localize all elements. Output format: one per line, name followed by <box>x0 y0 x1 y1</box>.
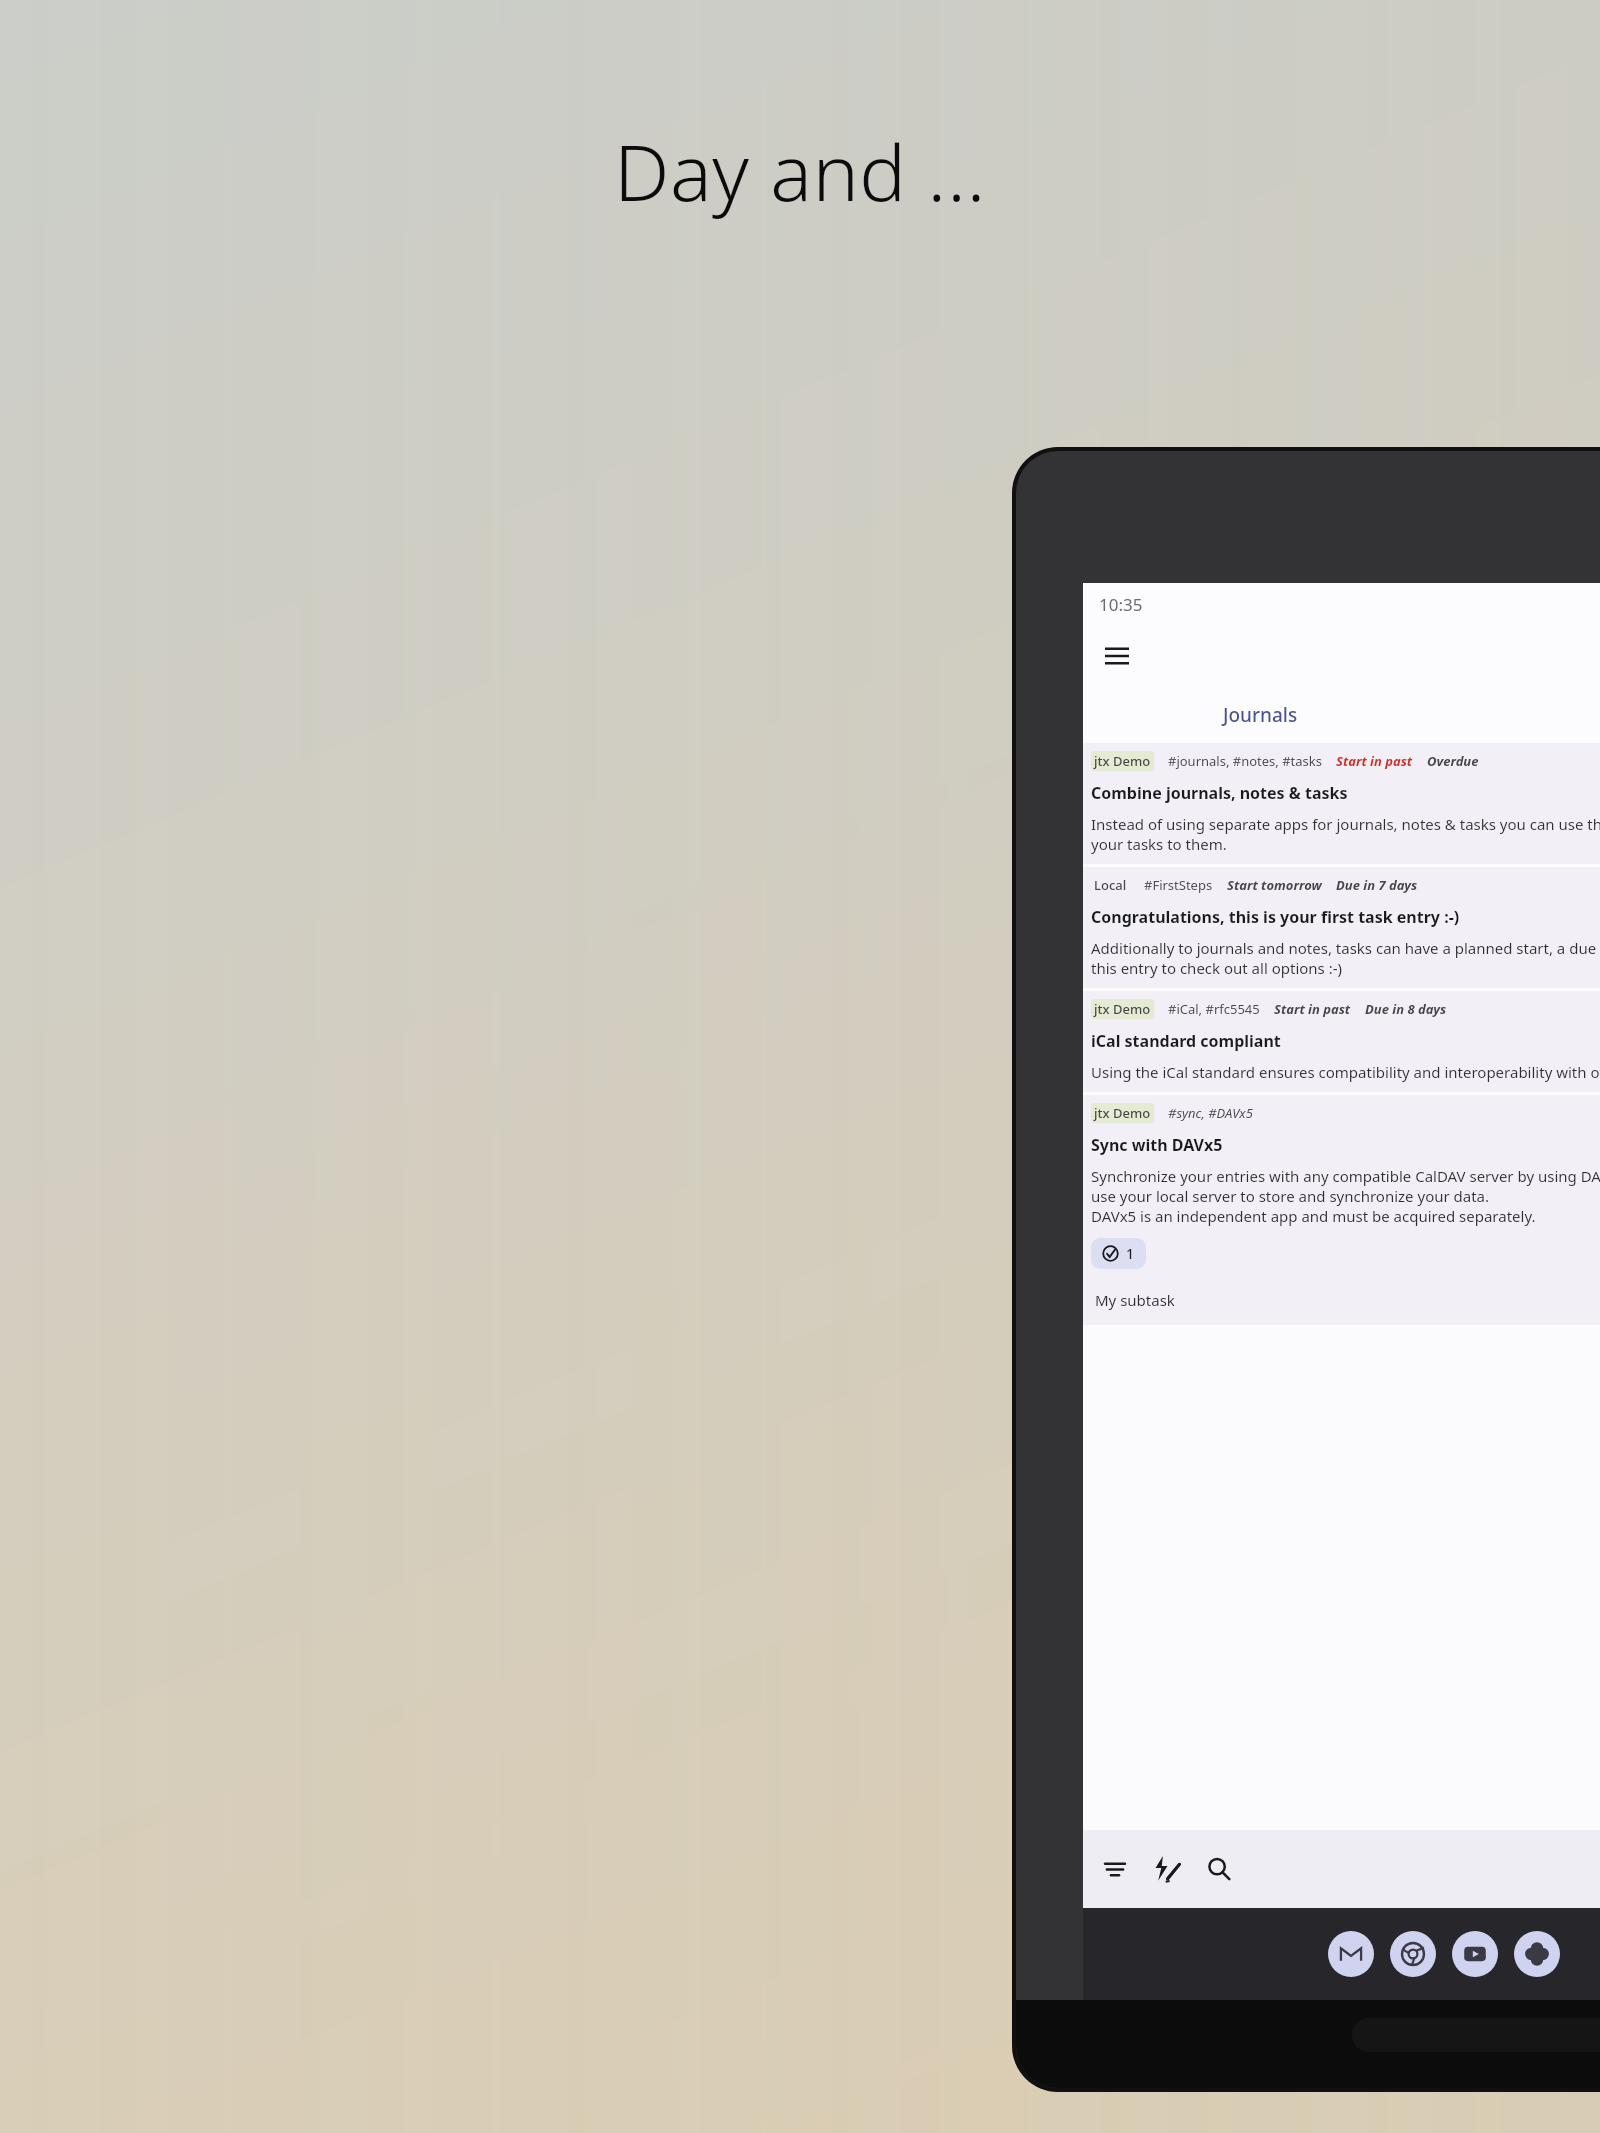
button[interactable]: Menu <box>1093 632 1141 680</box>
button[interactable]: My subtask <box>1091 1279 1600 1321</box>
staticText: Overdue <box>1427 752 1479 770</box>
button[interactable]: Photos <box>1514 1931 1560 1977</box>
staticText: Sync with DAVx5 <box>1091 1134 1223 1156</box>
staticText: Start in past <box>1336 752 1413 770</box>
staticText: use your local server to store and synch… <box>1091 1186 1490 1206</box>
button[interactable]: Chrome <box>1390 1931 1436 1977</box>
button[interactable]: Search <box>1193 1843 1245 1895</box>
staticText: #FirstSteps <box>1144 876 1213 894</box>
staticText: Instead of using separate apps for journ… <box>1091 814 1600 834</box>
button[interactable]: jtx Demo <box>1083 1095 1600 1325</box>
staticText: Using the iCal standard ensures compatib… <box>1091 1062 1600 1082</box>
staticText: DAVx5 is an independent app and must be … <box>1091 1206 1536 1226</box>
staticText: #journals, #notes, #tasks <box>1168 752 1322 770</box>
button[interactable]: jtx Demo <box>1083 991 1600 1092</box>
staticText: Congratulations, this is your first task… <box>1091 906 1460 928</box>
staticText: this entry to check out all options :-) <box>1091 958 1343 978</box>
button[interactable]: Journals <box>1223 702 1298 728</box>
staticText: Synchronize your entries with any compat… <box>1091 1166 1600 1186</box>
staticText: jtx Demo <box>1094 1104 1151 1122</box>
staticText: Due in 7 days <box>1336 876 1418 894</box>
staticText: your tasks to them. <box>1091 834 1227 854</box>
staticText: Local <box>1094 876 1127 894</box>
staticText: #iCal, #rfc5545 <box>1168 1000 1260 1018</box>
staticText: Additionally to journals and notes, task… <box>1091 938 1600 958</box>
staticText: 1 <box>1126 1244 1135 1263</box>
staticText: Start tomorrow <box>1227 876 1322 894</box>
staticText: iCal standard compliant <box>1091 1030 1281 1052</box>
staticText: Due in 8 days <box>1365 1000 1447 1018</box>
button[interactable]: Quick add <box>1141 1843 1193 1895</box>
staticText: Start in past <box>1274 1000 1351 1018</box>
staticText: 10:35 <box>1099 593 1143 616</box>
button[interactable]: Gmail <box>1328 1931 1374 1977</box>
staticText: jtx Demo <box>1094 1000 1151 1018</box>
button[interactable]: 1 <box>1091 1238 1146 1269</box>
staticText: jtx Demo <box>1094 752 1151 770</box>
button[interactable]: Local <box>1083 867 1600 988</box>
button[interactable]: YouTube <box>1452 1931 1498 1977</box>
staticText: Day and ... <box>614 118 986 224</box>
staticText: Combine journals, notes & tasks <box>1091 782 1348 804</box>
staticText: My subtask <box>1095 1290 1175 1310</box>
button[interactable]: Filter <box>1089 1843 1141 1895</box>
button[interactable]: jtx Demo <box>1083 743 1600 864</box>
staticText: #sync, #DAVx5 <box>1168 1104 1253 1122</box>
